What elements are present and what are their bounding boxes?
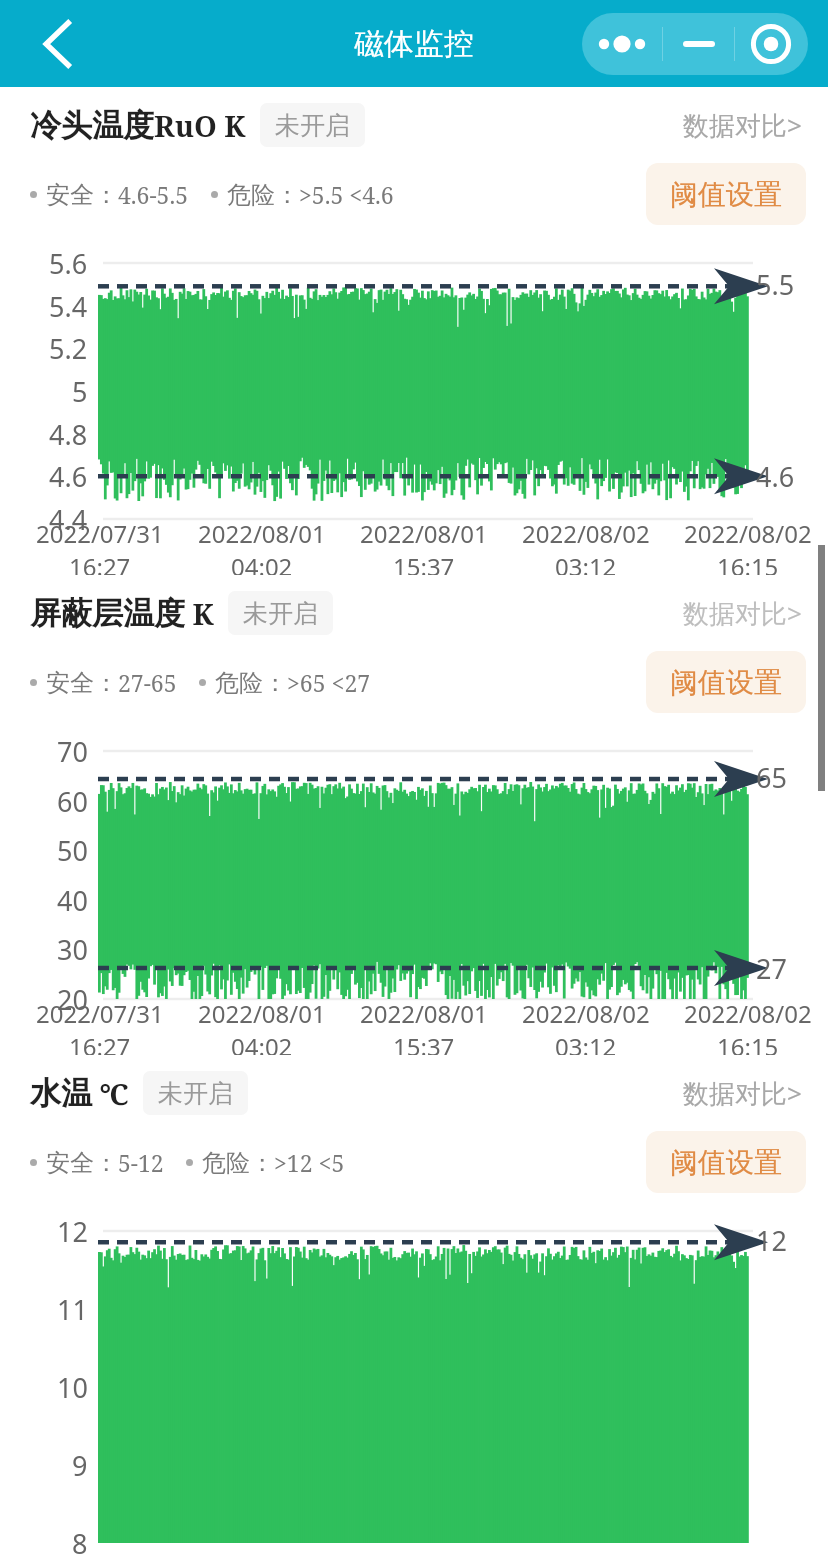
staticText: 阈值设置 [670, 177, 782, 212]
staticText: 16:27 [69, 1030, 131, 1055]
staticText: 5.2 [49, 330, 88, 367]
button[interactable]: 数据对比> [679, 591, 806, 635]
button[interactable]: 阈值设置 [646, 163, 806, 225]
staticText: 03:12 [555, 1030, 617, 1055]
staticText: 数据对比> [683, 595, 802, 631]
staticText: 16:15 [717, 550, 779, 575]
staticText: 15:37 [393, 1030, 455, 1055]
staticText: 27 [756, 950, 787, 987]
staticText: 水温 [30, 1074, 92, 1113]
staticText: 5.5 [756, 266, 795, 303]
staticText: 4.6 [49, 458, 88, 495]
staticText: 40 [57, 882, 88, 919]
staticText: 16:27 [69, 550, 131, 575]
staticText: 8 [72, 1525, 88, 1560]
button[interactable]: 阈值设置 [646, 651, 806, 713]
staticText: 2022/08/01 [360, 997, 488, 1030]
staticText: 12 [756, 1222, 787, 1259]
staticText: 5-12 [118, 1147, 164, 1178]
staticText: 安全： [46, 180, 118, 210]
staticText: 60 [57, 783, 88, 820]
staticText: 数据对比> [683, 107, 802, 143]
staticText: 16:15 [717, 1030, 779, 1055]
staticText: 2022/08/01 [198, 517, 326, 550]
button[interactable]: 未开启 [260, 103, 365, 147]
button[interactable]: 未开启 [143, 1071, 248, 1115]
button[interactable]: Minimize [663, 13, 734, 75]
staticText: 04:02 [231, 550, 293, 575]
staticText: 2022/08/01 [198, 997, 326, 1030]
staticText: 2022/07/31 [36, 997, 164, 1030]
staticText: 安全： [46, 668, 118, 698]
staticText: 危险： [202, 1148, 274, 1178]
staticText: 2022/08/02 [522, 517, 650, 550]
button[interactable]: 数据对比> [679, 1071, 806, 1115]
staticText: >5.5 <4.6 [299, 179, 394, 210]
staticText: 阈值设置 [670, 665, 782, 700]
staticText: 5 [72, 373, 88, 410]
button[interactable]: Back [20, 12, 84, 76]
staticText: 未开启 [158, 1078, 233, 1109]
staticText: 数据对比> [683, 1075, 802, 1111]
staticText: 11 [57, 1291, 88, 1328]
staticText: 20 [57, 981, 88, 1018]
button[interactable]: 阈值设置 [646, 1131, 806, 1193]
staticText: 2022/07/31 [36, 517, 164, 550]
staticText: 27-65 [118, 667, 177, 698]
staticText: 4.6-5.5 [118, 179, 189, 210]
staticText: ℃ [92, 1074, 129, 1113]
staticText: 2022/08/02 [684, 517, 812, 550]
staticText: 2022/08/02 [684, 997, 812, 1030]
staticText: 未开启 [243, 598, 318, 629]
staticText: 50 [57, 832, 88, 869]
staticText: 9 [72, 1447, 88, 1484]
staticText: 5.6 [49, 245, 88, 282]
staticText: RuO K [154, 106, 246, 145]
staticText: 屏蔽层温度 [30, 594, 185, 633]
staticText: 03:12 [555, 550, 617, 575]
staticText: 04:02 [231, 1030, 293, 1055]
staticText: 12 [57, 1213, 88, 1250]
staticText: 30 [57, 931, 88, 968]
staticText: 未开启 [275, 110, 350, 141]
button[interactable]: More options [582, 13, 662, 75]
staticText: 安全： [46, 1148, 118, 1178]
staticText: K [185, 594, 214, 633]
staticText: >65 <27 [287, 667, 371, 698]
staticText: 磁体监控 [354, 25, 474, 63]
button[interactable]: 未开启 [228, 591, 333, 635]
staticText: 70 [57, 733, 88, 770]
staticText: 5.4 [49, 288, 88, 325]
staticText: >12 <5 [274, 1147, 345, 1178]
staticText: 阈值设置 [670, 1145, 782, 1180]
staticText: 4.6 [756, 458, 795, 495]
staticText: 65 [756, 759, 787, 796]
staticText: 2022/08/01 [360, 517, 488, 550]
staticText: 10 [57, 1369, 88, 1406]
staticText: 15:37 [393, 550, 455, 575]
staticText: 危险： [227, 180, 299, 210]
staticText: 冷头温度 [30, 106, 154, 145]
button[interactable]: 数据对比> [679, 103, 806, 147]
staticText: 2022/08/02 [522, 997, 650, 1030]
staticText: 4.4 [49, 501, 88, 538]
staticText: 4.8 [49, 416, 88, 453]
staticText: 危险： [215, 668, 287, 698]
button[interactable]: Record [735, 13, 807, 75]
